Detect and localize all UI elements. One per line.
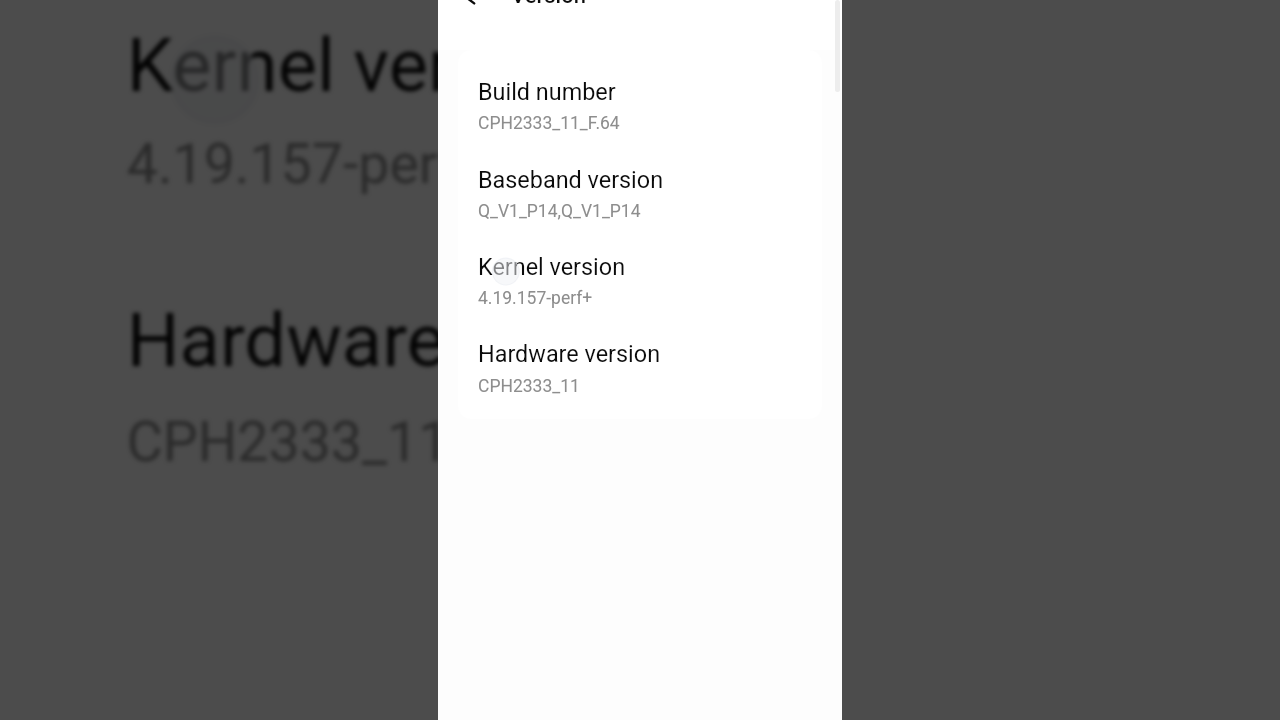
staticText: CPH2333_11 <box>478 376 580 397</box>
staticText: Kernel version <box>478 253 626 280</box>
button[interactable] <box>0 233 1280 474</box>
staticText: Q_V1_P14,Q_V1_P14 <box>478 201 641 222</box>
button[interactable] <box>438 233 842 309</box>
staticText: 4.19.157-perf+ <box>478 288 593 309</box>
button[interactable] <box>438 58 842 134</box>
button[interactable] <box>0 0 1280 198</box>
staticText: Baseband version <box>478 166 664 193</box>
button[interactable]: Back <box>448 0 488 14</box>
staticText: 4.19.157-perf+ <box>127 132 491 198</box>
staticText: CPH2333_11 <box>127 411 450 477</box>
button[interactable] <box>438 146 842 222</box>
staticText: CPH2333_11_F.64 <box>478 113 620 134</box>
staticText: Hardware version <box>478 340 661 367</box>
staticText: Kernel version <box>127 21 596 106</box>
button[interactable] <box>438 320 842 396</box>
staticText: Hardware version <box>127 297 706 382</box>
staticText: Build number <box>478 78 616 105</box>
staticText: Version <box>511 0 586 9</box>
